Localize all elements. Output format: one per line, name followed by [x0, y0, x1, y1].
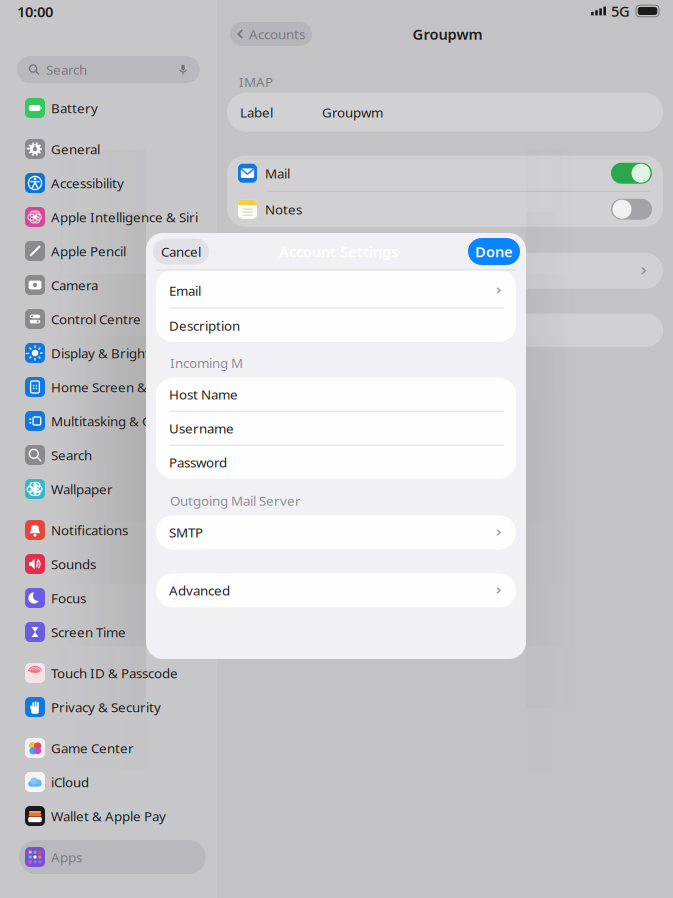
button[interactable]: Password — [156, 446, 516, 479]
button[interactable]: Display & Brightness — [0, 336, 217, 370]
staticText: Username — [169, 419, 234, 437]
staticText: Password — [169, 453, 227, 471]
staticText: Camera — [51, 276, 98, 294]
button[interactable]: Accounts — [230, 22, 312, 46]
staticText: Control Centre — [51, 310, 141, 328]
staticText: iCloud — [51, 773, 89, 791]
button[interactable]: Camera — [0, 268, 217, 302]
button[interactable]: Accessibility — [0, 166, 217, 200]
button[interactable]: SMTP — [156, 515, 516, 549]
staticText: Host Name — [169, 385, 238, 403]
button[interactable]: Privacy & Security — [0, 690, 217, 724]
button[interactable]: Host Name — [156, 378, 516, 411]
staticText: IMAP — [239, 73, 273, 91]
button[interactable]: Touch ID & Passcode — [0, 656, 217, 690]
staticText: Apps — [51, 848, 82, 866]
staticText: 5G — [611, 1, 630, 21]
button[interactable]: Apple Intelligence & Siri — [0, 200, 217, 234]
button[interactable]: Email — [156, 273, 516, 307]
staticText: Screen Time — [51, 623, 126, 641]
staticText: Multitasking & Gestures — [51, 412, 198, 430]
staticText: Notes — [265, 200, 302, 218]
button[interactable]: Game Center — [0, 731, 217, 765]
staticText: Incoming M — [170, 354, 243, 372]
button[interactable]: Apps — [0, 840, 206, 874]
staticText: Apple Intelligence & Siri — [51, 208, 198, 226]
button[interactable]: Description — [156, 308, 516, 342]
button[interactable]: Mail — [227, 156, 663, 191]
button[interactable]: Control Centre — [0, 302, 217, 336]
staticText: Cancel — [161, 243, 201, 260]
button[interactable]: Sounds — [0, 547, 217, 581]
staticText: Groupwm — [412, 24, 482, 44]
button[interactable]: Home Screen & App Library — [0, 370, 217, 404]
staticText: Search — [51, 446, 92, 464]
staticText: General — [51, 140, 100, 158]
staticText: Accessibility — [51, 174, 124, 192]
staticText: Account Settings — [279, 242, 398, 261]
button[interactable]: Notifications — [0, 513, 217, 547]
button[interactable]: Wallpaper — [0, 472, 217, 506]
staticText: Apple Pencil — [51, 242, 126, 260]
staticText: Privacy & Security — [51, 698, 161, 716]
button[interactable]: Wallet & Apple Pay — [0, 799, 217, 833]
button[interactable]: Multitasking & Gestures — [0, 404, 217, 438]
staticText: Outgoing Mail Server — [170, 492, 301, 509]
button[interactable]: Cancel — [153, 238, 209, 264]
staticText: Notifications — [51, 521, 128, 539]
staticText: Game Center — [51, 739, 134, 757]
staticText: Focus — [51, 589, 86, 607]
staticText: Mail — [265, 164, 290, 182]
button[interactable]: Battery — [0, 91, 217, 125]
button[interactable]: Screen Time — [0, 615, 217, 649]
button[interactable]: Notes — [227, 192, 663, 227]
staticText: Sounds — [51, 555, 96, 573]
staticText: Description — [169, 317, 240, 334]
staticText: Home Screen & App Library — [51, 378, 211, 396]
staticText: Battery — [51, 99, 98, 117]
staticText: Groupwm — [322, 103, 383, 121]
staticText: Label — [240, 103, 273, 121]
button[interactable]: Apple Pencil — [0, 234, 217, 268]
staticText: Touch ID & Passcode — [51, 664, 178, 682]
button[interactable]: General — [0, 132, 217, 166]
staticText: Wallet & Apple Pay — [51, 807, 166, 825]
button[interactable]: Advanced — [156, 573, 516, 607]
staticText: SMTP — [169, 524, 203, 541]
staticText: Wallpaper — [51, 480, 113, 498]
staticText: Display & Brightness — [51, 344, 178, 362]
staticText: 10:00 — [17, 2, 53, 21]
button[interactable]: Search — [0, 438, 217, 472]
button[interactable]: iCloud — [0, 765, 217, 799]
staticText: Done — [475, 242, 513, 261]
button[interactable]: Done — [468, 238, 520, 265]
button[interactable]: Focus — [0, 581, 217, 615]
staticText: Search — [46, 61, 87, 78]
staticText: Advanced — [169, 582, 230, 599]
staticText: Email — [169, 282, 201, 299]
staticText: Accounts — [249, 25, 305, 43]
button[interactable]: Username — [156, 412, 516, 445]
